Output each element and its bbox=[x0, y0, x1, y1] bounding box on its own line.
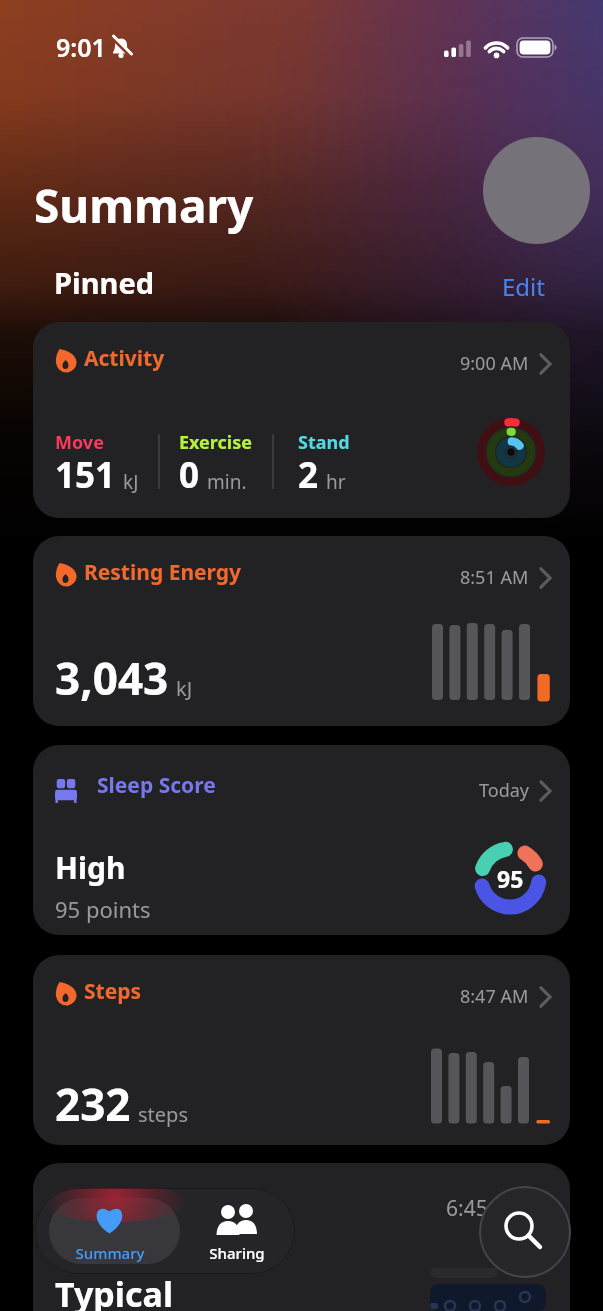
staticText: Summary bbox=[34, 174, 254, 237]
button[interactable]: Sharing bbox=[180, 1188, 295, 1274]
button[interactable] bbox=[49, 1198, 180, 1264]
staticText: hr bbox=[326, 469, 346, 495]
staticText: 151 bbox=[55, 451, 116, 499]
staticText: High bbox=[55, 847, 126, 888]
staticText: Exercise bbox=[179, 430, 253, 455]
staticText: Typical bbox=[55, 1271, 174, 1311]
button[interactable]: 6:45 bbox=[33, 1163, 570, 1311]
button[interactable] bbox=[483, 137, 590, 244]
staticText: 8:51 AM bbox=[460, 565, 529, 590]
staticText: min. bbox=[207, 469, 247, 495]
staticText: Activity bbox=[84, 344, 165, 373]
staticText: 8:47 AM bbox=[460, 984, 529, 1009]
staticText: 6:45 bbox=[446, 1194, 488, 1223]
staticText: 0 bbox=[179, 451, 200, 499]
staticText: Summary bbox=[71, 1243, 149, 1263]
staticText: 9:00 AM bbox=[460, 351, 529, 376]
staticText: 95 points bbox=[55, 894, 151, 924]
staticText: kJ bbox=[176, 675, 193, 702]
staticText: 9:01 bbox=[56, 30, 106, 64]
button[interactable]: Edit bbox=[502, 270, 545, 303]
staticText: Today bbox=[479, 778, 529, 803]
staticText: 232 bbox=[55, 1074, 131, 1134]
staticText: Move bbox=[55, 430, 104, 455]
staticText: Steps bbox=[84, 977, 142, 1006]
button[interactable]: Resting Energy bbox=[33, 536, 570, 726]
staticText: 95 bbox=[497, 863, 524, 894]
staticText: Sleep Score bbox=[97, 771, 216, 800]
staticText: Resting Energy bbox=[84, 558, 242, 587]
button[interactable]: Steps bbox=[33, 955, 570, 1145]
staticText: 3,043 bbox=[55, 648, 169, 708]
staticText: Stand bbox=[298, 430, 350, 455]
button[interactable] bbox=[479, 1186, 571, 1278]
button[interactable]: Sleep Score bbox=[33, 745, 570, 935]
staticText: Pinned bbox=[54, 263, 155, 302]
staticText: 2 bbox=[298, 451, 319, 499]
button[interactable]: Activity bbox=[33, 322, 570, 518]
staticText: Sharing bbox=[202, 1243, 272, 1263]
staticText: kJ bbox=[123, 469, 139, 495]
staticText: steps bbox=[138, 1101, 188, 1128]
